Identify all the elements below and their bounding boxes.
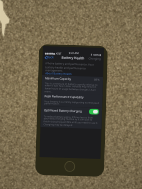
staticText: 9:41 AM — [69, 51, 79, 55]
staticText: Peak Performance Capability — [44, 94, 84, 99]
staticText: This is a measure of battery capacity re… — [44, 81, 100, 95]
staticText: ●●●●● AT&T — [45, 51, 62, 55]
staticText: To reduce battery aging, iPhone learns f… — [43, 114, 99, 128]
staticText: iPhone battery and performance. Your bat… — [45, 61, 100, 73]
staticText: Maximum Capacity — [45, 76, 71, 81]
staticText: Back — [47, 55, 55, 59]
staticText: $ 100% ▮ — [91, 53, 102, 56]
staticText: Charging — [89, 56, 102, 61]
staticText: Your battery is currently supporting nor… — [44, 99, 99, 107]
staticText: Optimized Battery Charging — [44, 108, 82, 113]
button[interactable]: Back — [45, 55, 55, 59]
button[interactable]: Peak Performance Capability — [41, 93, 102, 108]
button[interactable]: Optimized Battery Charging — [44, 107, 99, 115]
button[interactable]: About Battery Health — [45, 71, 72, 76]
button[interactable]: Maximum Capacity — [41, 75, 103, 96]
staticText: Battery Health — [62, 56, 85, 60]
button[interactable] — [64, 161, 75, 172]
staticText: 89% — [94, 78, 100, 82]
